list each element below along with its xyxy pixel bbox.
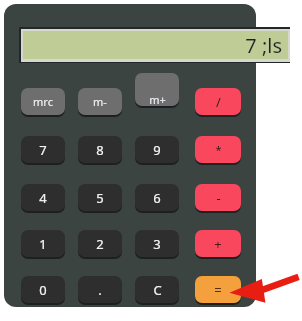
button[interactable]: m+ — [135, 73, 179, 106]
staticText: 9 — [153, 141, 161, 159]
button[interactable]: 9 — [135, 136, 179, 163]
staticText: 6 — [153, 189, 161, 207]
staticText: 7 ;ls — [245, 32, 282, 59]
staticText: m+ — [149, 92, 166, 106]
staticText: 3 — [153, 235, 161, 253]
staticText: 2 — [96, 235, 104, 253]
button[interactable]: . — [78, 276, 122, 303]
staticText: 1 — [39, 235, 47, 253]
button[interactable]: - — [195, 184, 241, 211]
button[interactable]: 2 — [78, 230, 122, 257]
staticText: - — [216, 189, 221, 207]
other: Pointer arrow highlighting equals key — [228, 270, 300, 308]
staticText: . — [98, 281, 102, 299]
button[interactable]: = — [195, 276, 241, 303]
staticText: 4 — [39, 189, 47, 207]
button[interactable]: + — [195, 230, 241, 257]
button[interactable]: 8 — [78, 136, 122, 163]
staticText: + — [214, 235, 222, 253]
button[interactable]: 7 — [21, 136, 65, 163]
staticText: / — [216, 93, 221, 111]
staticText: = — [214, 281, 222, 299]
button[interactable]: / — [195, 88, 241, 115]
staticText: 7 — [39, 141, 47, 159]
staticText: m- — [93, 94, 107, 109]
staticText: * — [215, 142, 222, 157]
button[interactable]: m- — [78, 88, 122, 115]
button[interactable]: * — [195, 136, 241, 163]
button[interactable]: 1 — [21, 230, 65, 257]
staticText: 5 — [96, 189, 104, 207]
staticText: 0 — [39, 281, 47, 299]
button[interactable]: 6 — [135, 184, 179, 211]
button[interactable]: 0 — [21, 276, 65, 303]
button[interactable]: mrc — [21, 88, 65, 115]
button[interactable]: 4 — [21, 184, 65, 211]
button[interactable]: 3 — [135, 230, 179, 257]
button[interactable]: C — [135, 276, 179, 303]
staticText: C — [153, 281, 162, 299]
staticText: mrc — [33, 94, 53, 109]
button[interactable]: 5 — [78, 184, 122, 211]
staticText: 8 — [96, 141, 104, 159]
